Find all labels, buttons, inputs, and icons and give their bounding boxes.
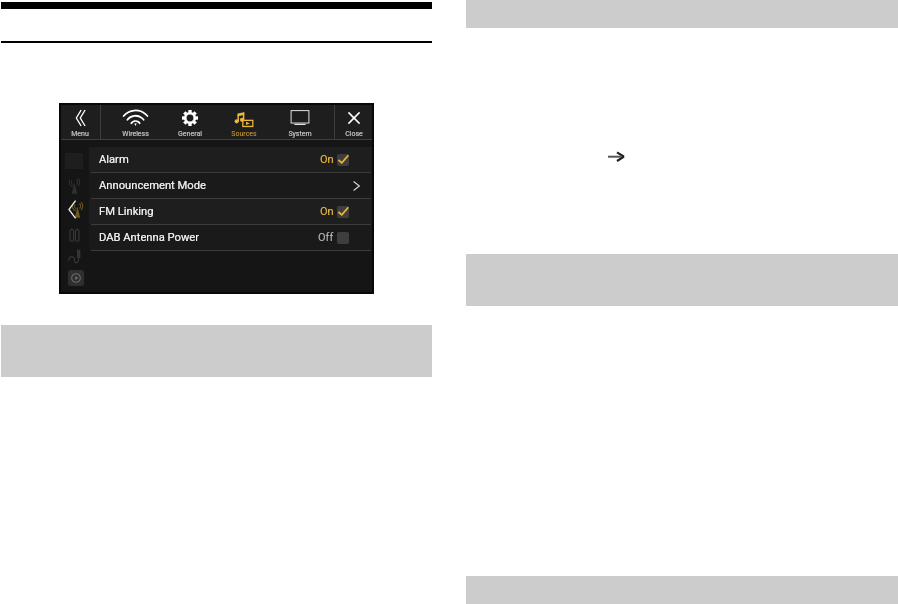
button[interactable]: Announcements xyxy=(64,200,85,219)
staticText: On xyxy=(320,205,334,218)
button[interactable]: General xyxy=(166,104,214,140)
button[interactable]: Wireless xyxy=(111,104,159,140)
button[interactable]: Alarm xyxy=(89,147,373,172)
button[interactable]: Sources xyxy=(220,104,268,140)
staticText: General xyxy=(178,130,202,138)
staticText: Off xyxy=(318,231,334,244)
button[interactable]: DAB xyxy=(64,176,85,195)
staticText: Sources xyxy=(231,130,257,138)
staticText: Menu xyxy=(71,130,89,138)
button[interactable]: Antenna power xyxy=(64,226,85,245)
button[interactable]: Announcement Mode xyxy=(89,173,373,198)
button[interactable]: Menu xyxy=(56,104,104,140)
button[interactable]: Cable xyxy=(64,247,85,266)
button[interactable]: Player xyxy=(68,270,84,286)
staticText: Close xyxy=(345,130,363,138)
button[interactable]: FM Linking xyxy=(89,199,373,224)
button[interactable]: DAB Antenna Power xyxy=(89,225,373,250)
staticText: DAB Antenna Power xyxy=(99,231,200,244)
staticText: Wireless xyxy=(122,130,149,138)
button[interactable]: System xyxy=(276,104,324,140)
staticText: System xyxy=(288,130,312,138)
staticText: Alarm xyxy=(99,153,129,166)
staticText: FM Linking xyxy=(99,205,154,218)
staticText: Announcement Mode xyxy=(99,179,206,192)
button[interactable]: Close xyxy=(330,104,378,140)
staticText: On xyxy=(320,153,334,166)
